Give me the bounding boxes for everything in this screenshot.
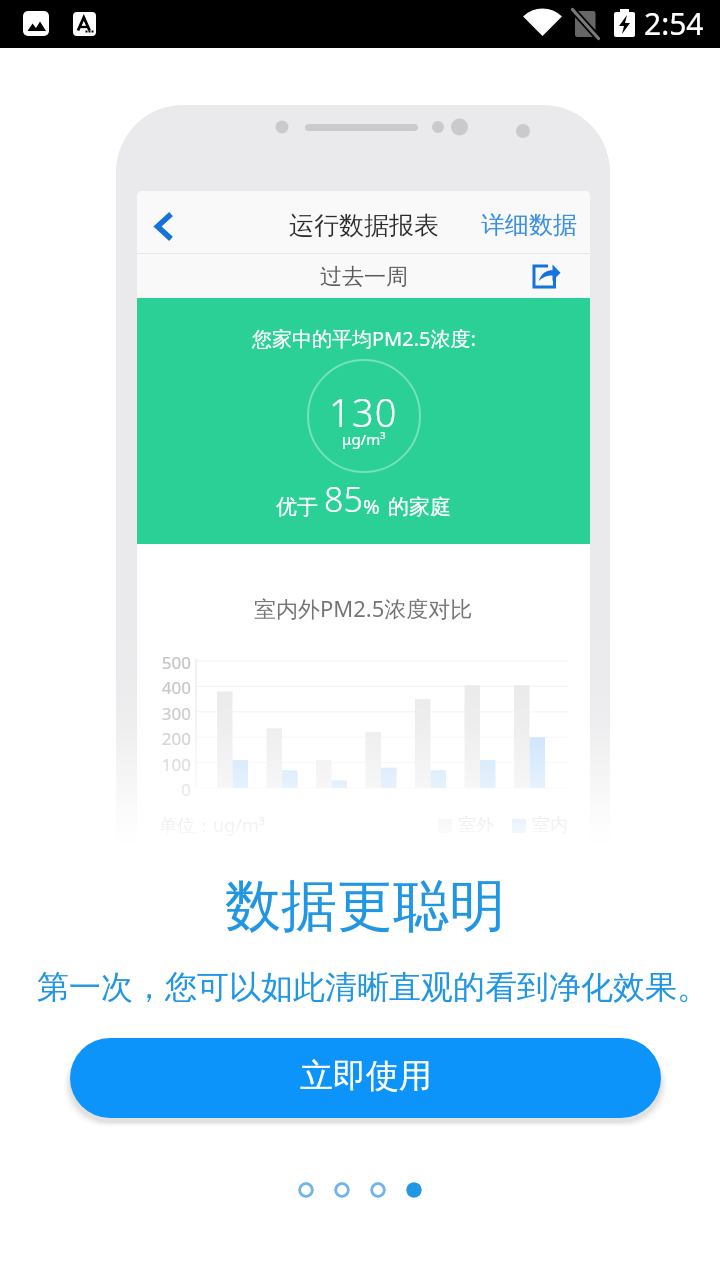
button[interactable]: Share — [528, 260, 564, 296]
staticText: 的家庭 — [388, 494, 451, 520]
staticText: 2:54 — [644, 3, 704, 44]
staticText: 400 — [161, 676, 191, 699]
staticText: 单位：ug/m³ — [159, 813, 266, 838]
staticText: 室内外PM2.5浓度对比 — [254, 593, 473, 623]
button[interactable]: 详细数据 — [471, 198, 590, 252]
staticText: 立即使用 — [300, 1055, 432, 1097]
button[interactable]: Back — [137, 200, 181, 244]
staticText: 数据更聪明 — [225, 871, 505, 942]
staticText: 过去一周 — [320, 263, 408, 291]
staticText: 300 — [161, 702, 191, 725]
staticText: 室内 — [532, 814, 568, 837]
staticText: 500 — [161, 651, 191, 674]
staticText: 130 — [329, 386, 398, 438]
staticText: 您家中的平均PM2.5浓度: — [252, 325, 476, 352]
staticText: 优于 — [276, 494, 318, 520]
staticText: 0 — [181, 778, 191, 801]
button[interactable]: Page 2 — [334, 1182, 350, 1198]
button[interactable]: Page 4 — [406, 1182, 422, 1198]
staticText: 室外 — [458, 814, 494, 837]
staticText: % — [363, 493, 380, 520]
staticText: 详细数据 — [481, 210, 577, 240]
staticText: 第一次，您可以如此清晰直观的看到净化效果。 — [37, 967, 709, 1007]
button[interactable]: Page 1 — [298, 1182, 314, 1198]
staticText: μg/m³ — [342, 429, 386, 449]
button[interactable]: 立即使用 — [70, 1038, 661, 1118]
staticText: 200 — [161, 727, 191, 750]
staticText: 85 — [324, 476, 363, 522]
button[interactable]: Page 3 — [370, 1182, 386, 1198]
staticText: 100 — [161, 753, 191, 776]
staticText: 运行数据报表 — [289, 210, 439, 241]
